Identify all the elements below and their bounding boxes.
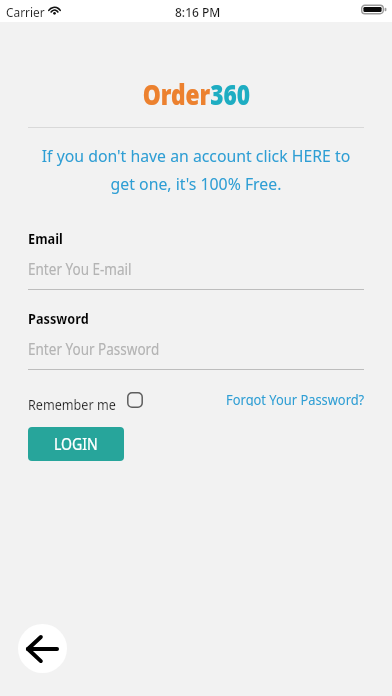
button[interactable]: If you don't have an account click HERE … — [28, 144, 364, 195]
staticText: 8:16 PM — [175, 4, 221, 21]
button[interactable]: Remember me — [28, 394, 149, 411]
staticText: Password — [28, 308, 89, 328]
staticText: Order360 — [143, 75, 250, 113]
button[interactable]: Enter You E-mail — [28, 258, 132, 280]
staticText: Carrier — [6, 4, 45, 21]
staticText: Forgot Your Password? — [226, 389, 365, 406]
button[interactable]: LOGIN — [28, 427, 124, 461]
button[interactable]: Enter Your Password — [28, 338, 160, 360]
staticText: If you don't have an account click HERE … — [40, 144, 352, 195]
staticText: Remember me — [28, 394, 116, 411]
button[interactable]: Forgot Your Password? — [226, 389, 388, 406]
button[interactable]: Back — [18, 624, 67, 673]
staticText: Email — [28, 228, 63, 248]
staticText: LOGIN — [54, 433, 98, 455]
